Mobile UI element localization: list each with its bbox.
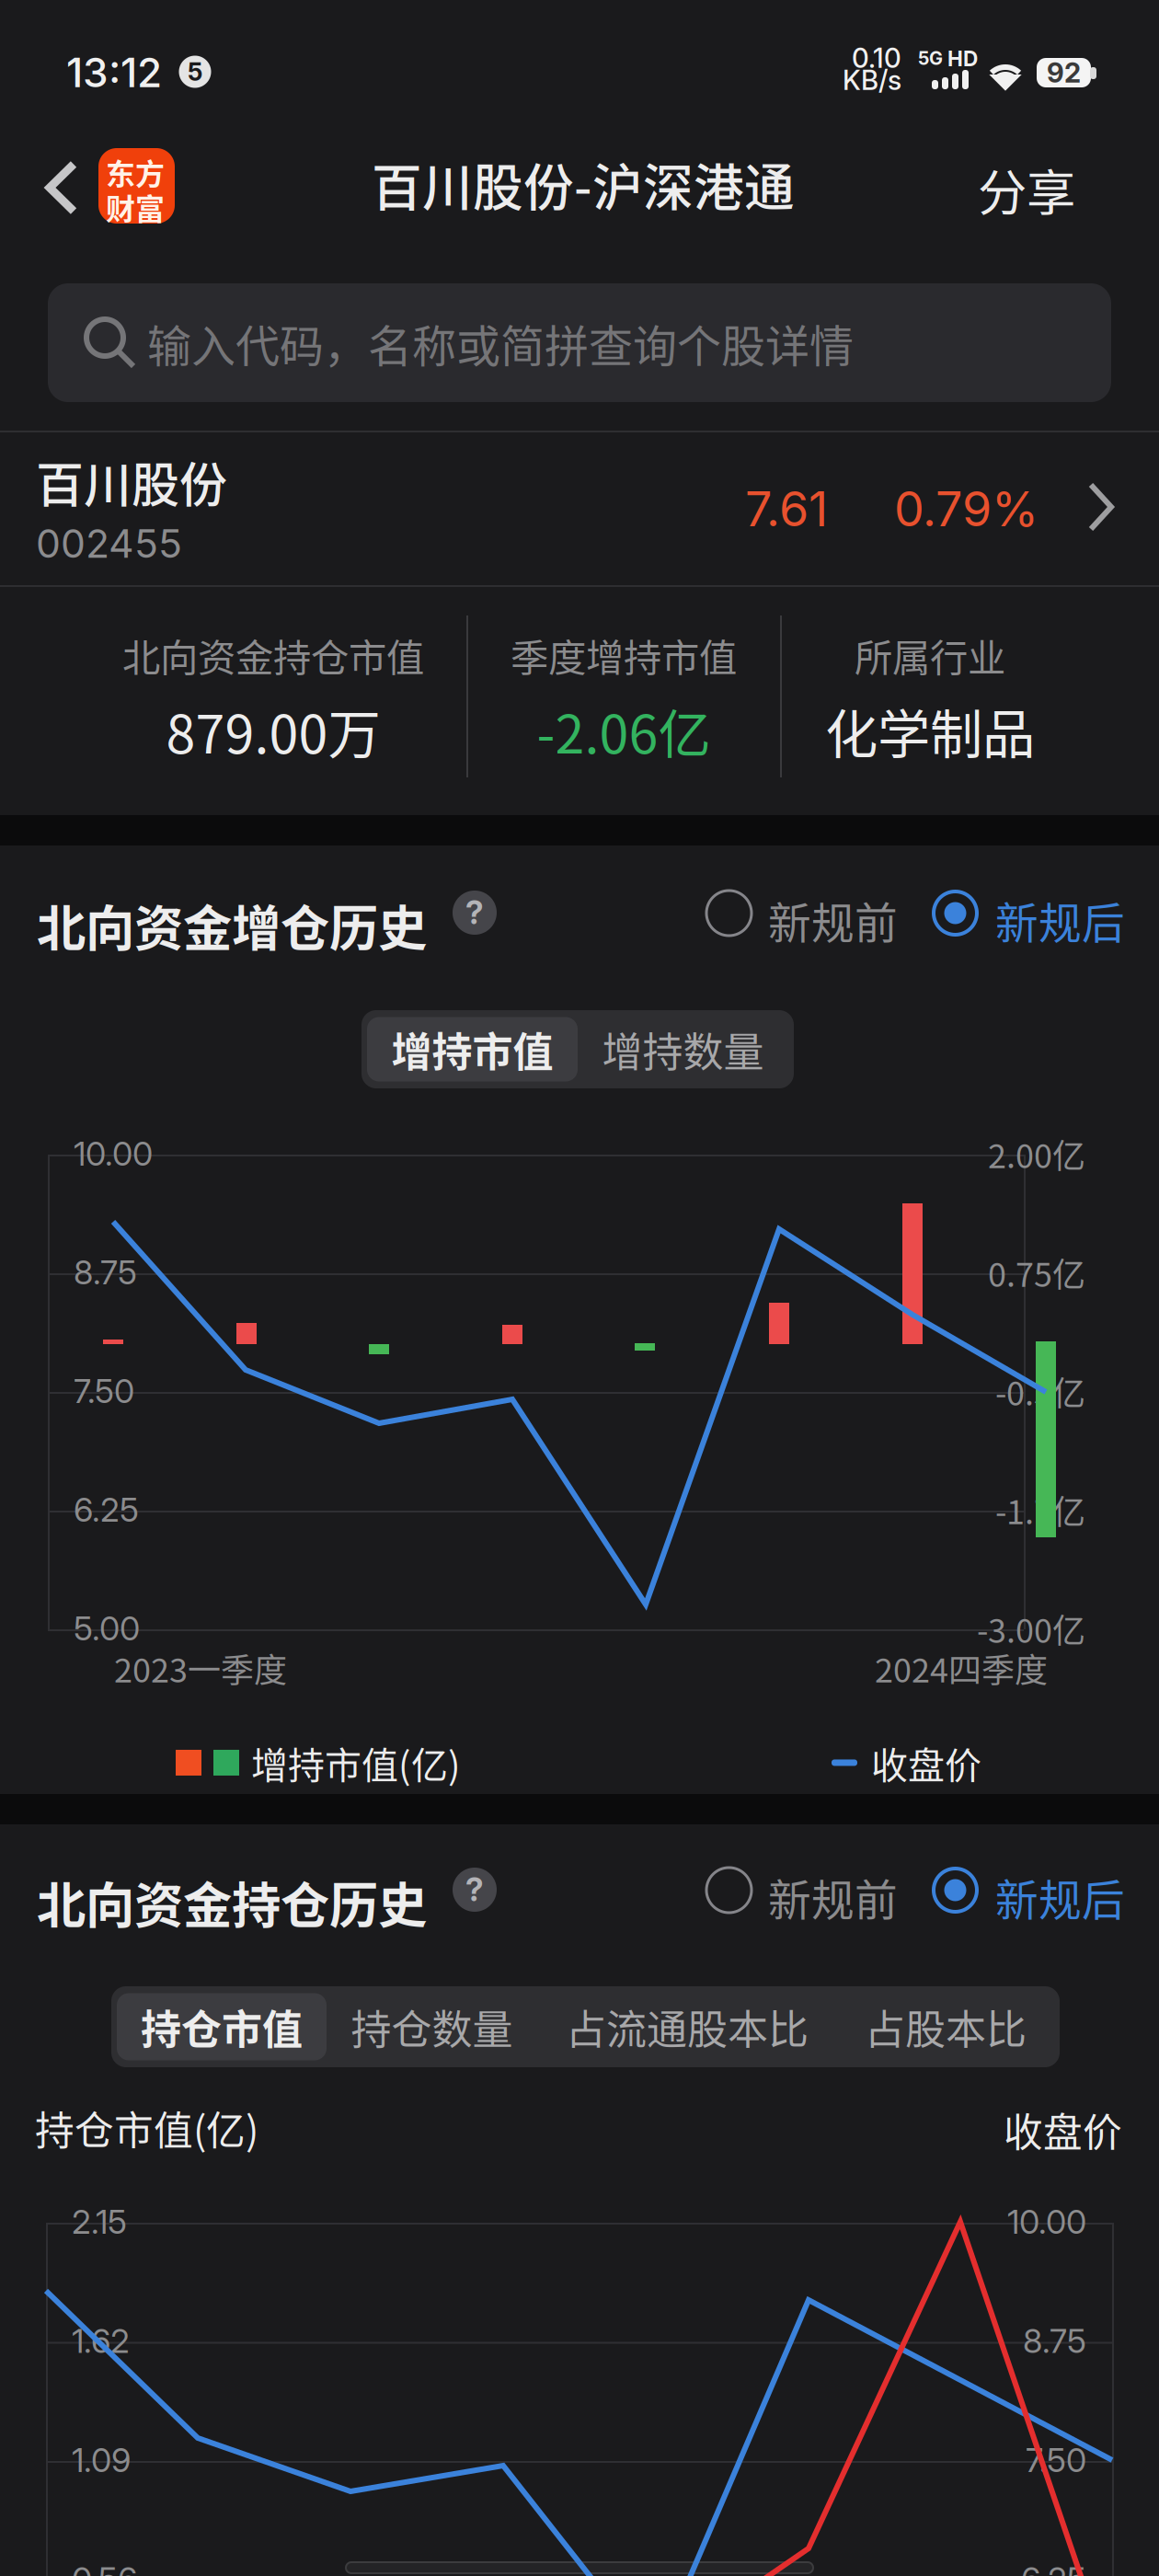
staticText: 13:12 [66,48,162,97]
staticText: 002455 [36,520,182,567]
staticText: 0.56 [72,2559,137,2576]
staticText: 0.79% [894,480,1039,538]
staticText: 增持市值 [391,1020,553,1079]
button[interactable]: 持仓市值 [117,1986,327,2067]
staticText: 收盘价 [1004,2101,1122,2158]
staticText: 6.25 [74,1490,139,1530]
staticText: 2.15 [72,2202,127,2242]
staticText: 增持市值(亿) [251,1736,461,1789]
staticText: 5 [188,57,202,87]
staticText: 6.25 [1021,2559,1086,2576]
button[interactable]: 增持数量 [578,1010,788,1088]
staticText: 0.10 [852,42,901,74]
staticText: 季度增持市值 [511,628,737,683]
staticText: 百川股份 [36,447,227,516]
staticText: 持仓市值 [141,1997,303,2056]
staticText: 7.50 [74,1371,134,1411]
staticText: 新规前 [768,889,898,951]
staticText: 收盘价 [871,1736,981,1789]
staticText: 10.00 [74,1134,153,1174]
button[interactable]: 说明 [444,882,505,943]
staticText: 5G [918,47,943,69]
staticText: 输入代码，名称或简拼查询个股详情 [147,311,854,375]
staticText: ? [465,893,484,932]
button[interactable]: 输入代码，名称或简拼查询个股详情 [48,283,1111,402]
staticText: 百川股份-沪深港通 [372,147,795,220]
button[interactable]: 新规前 [706,1861,901,1920]
button[interactable]: 新规后 [934,884,1129,943]
staticText: 10.00 [1007,2202,1086,2242]
staticText: 0.75亿 [988,1248,1085,1296]
staticText: 所属行业 [855,628,1005,683]
button[interactable]: 持仓数量 [327,1986,537,2067]
staticText: 7.61 [745,480,828,538]
staticText: 分享 [978,154,1075,225]
button[interactable]: 新规前 [706,884,901,943]
staticText: 北向资金持仓历史 [37,1867,427,1938]
staticText: HD [947,46,978,71]
staticText: 持仓数量 [351,1997,513,2056]
staticText: 东方 [106,151,165,193]
button[interactable]: 百川股份 [0,431,1159,585]
staticText: 新规后 [995,889,1125,951]
button[interactable]: 新规后 [934,1861,1129,1920]
button[interactable]: 返回 [20,142,103,234]
staticText: 7.50 [1026,2440,1086,2480]
staticText: 2024四季度 [875,1644,1048,1692]
staticText: 占股本比 [865,1997,1027,2056]
staticText: 持仓市值(亿) [35,2099,258,2156]
staticText: 北向资金增仓历史 [37,890,427,961]
staticText: 2023一季度 [114,1644,287,1692]
staticText: -1.7亿 [995,1486,1085,1534]
staticText: KB/s [843,64,901,96]
staticText: -0.5亿 [995,1367,1085,1415]
staticText: 化学制品 [825,692,1035,769]
staticText: -3.00亿 [977,1604,1085,1652]
staticText: 财富 [106,186,165,228]
button[interactable]: 占流通股本比 [537,1986,837,2067]
staticText: ? [465,1870,484,1909]
button[interactable]: 增持市值 [367,1010,578,1088]
staticText: 北向资金持仓市值 [122,628,424,683]
button[interactable]: 占股本比 [837,1986,1054,2067]
button[interactable]: 分享 [944,145,1109,234]
staticText: 5.00 [74,1608,140,1648]
staticText: 新规后 [995,1866,1125,1928]
staticText: 占流通股本比 [566,1997,809,2056]
button[interactable]: 东方财富 [98,148,175,224]
staticText: 92 [1047,56,1081,89]
staticText: 2.00亿 [988,1130,1085,1178]
staticText: -2.06亿 [537,692,711,769]
staticText: 879.00万 [166,692,380,769]
staticText: 8.75 [74,1252,137,1292]
staticText: 增持数量 [602,1020,764,1079]
staticText: 新规前 [768,1866,898,1928]
staticText: 1.09 [72,2440,131,2480]
staticText: 8.75 [1023,2321,1086,2361]
staticText: 1.62 [72,2321,130,2361]
button[interactable]: 说明 [444,1859,505,1920]
